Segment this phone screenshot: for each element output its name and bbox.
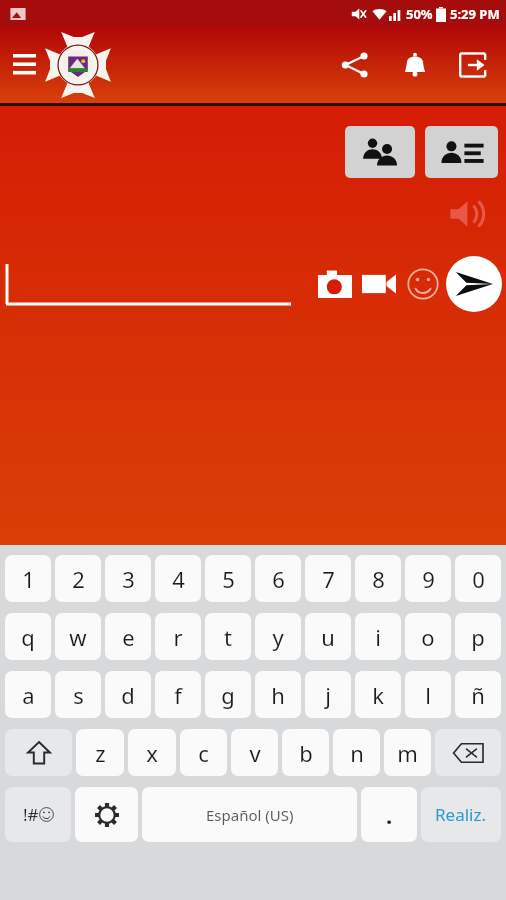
staticText: v <box>249 738 261 768</box>
button[interactable]: i <box>355 613 401 660</box>
staticText: m <box>397 738 418 768</box>
button[interactable]: Sound <box>446 194 486 234</box>
staticText: ñ <box>471 680 485 710</box>
button[interactable]: z <box>76 729 124 776</box>
staticText: 6 <box>272 564 285 594</box>
staticText: p <box>471 622 485 652</box>
button[interactable]: t <box>205 613 251 660</box>
staticText: 0 <box>472 564 485 594</box>
button[interactable]: p <box>455 613 501 660</box>
button[interactable]: Notifications <box>392 42 438 88</box>
staticText: s <box>73 680 84 710</box>
staticText: 5 <box>222 564 235 594</box>
button[interactable]: c <box>180 729 227 776</box>
button[interactable]: 2 <box>55 555 101 602</box>
staticText: b <box>299 738 313 768</box>
button[interactable]: Group chat <box>345 126 415 178</box>
button[interactable]: j <box>305 671 351 718</box>
staticText: !# <box>23 803 39 826</box>
staticText: 4 <box>172 564 185 594</box>
button[interactable]: e <box>105 613 151 660</box>
button[interactable]: ñ <box>455 671 501 718</box>
button[interactable]: Settings <box>75 787 138 842</box>
button[interactable]: r <box>155 613 201 660</box>
button[interactable]: k <box>355 671 401 718</box>
button[interactable]: s <box>55 671 101 718</box>
button[interactable]: g <box>205 671 251 718</box>
staticText: 5:29 PM <box>450 5 500 23</box>
button[interactable]: 4 <box>155 555 201 602</box>
button[interactable]: 3 <box>105 555 151 602</box>
button[interactable]: . <box>361 787 417 842</box>
button[interactable]: 1 <box>5 555 51 602</box>
staticText: t <box>224 622 232 652</box>
staticText: 7 <box>322 564 335 594</box>
button[interactable]: m <box>384 729 431 776</box>
staticText: j <box>325 680 331 710</box>
staticText: Realiz. <box>435 803 487 826</box>
button[interactable]: h <box>255 671 301 718</box>
button[interactable]: w <box>55 613 101 660</box>
button[interactable]: Video <box>358 263 400 305</box>
staticText: w <box>69 622 87 652</box>
staticText: e <box>122 622 135 652</box>
staticText: . <box>386 800 393 830</box>
button[interactable]: Realiz. <box>421 787 501 842</box>
staticText: a <box>22 680 35 710</box>
button[interactable]: Contacts <box>425 126 498 178</box>
staticText: i <box>375 622 381 652</box>
staticText: l <box>425 680 431 710</box>
button[interactable]: l <box>405 671 451 718</box>
button[interactable]: Symbols <box>5 787 71 842</box>
button[interactable]: 9 <box>405 555 451 602</box>
button[interactable]: Emoji <box>402 263 444 305</box>
staticText: o <box>421 622 435 652</box>
staticText: 9 <box>422 564 435 594</box>
button[interactable]: Backspace <box>435 729 501 776</box>
button[interactable]: Logo <box>42 29 114 101</box>
button[interactable]: Shift <box>5 729 72 776</box>
staticText: 3 <box>122 564 135 594</box>
button[interactable]: Log out <box>450 42 496 88</box>
staticText: z <box>95 738 106 768</box>
staticText: k <box>372 680 384 710</box>
button[interactable]: 8 <box>355 555 401 602</box>
button[interactable]: n <box>333 729 380 776</box>
button[interactable]: f <box>155 671 201 718</box>
staticText: f <box>174 680 182 710</box>
button[interactable]: Español (US) <box>142 787 357 842</box>
button[interactable]: Share <box>332 42 378 88</box>
button[interactable]: 7 <box>305 555 351 602</box>
staticText: r <box>173 622 183 652</box>
button[interactable]: u <box>305 613 351 660</box>
button[interactable]: x <box>128 729 176 776</box>
staticText: 50% <box>406 5 433 23</box>
staticText: n <box>350 738 364 768</box>
staticText: d <box>121 680 135 710</box>
button[interactable]: Menu <box>4 45 44 85</box>
button[interactable] <box>6 262 291 306</box>
staticText: y <box>272 622 284 652</box>
button[interactable]: d <box>105 671 151 718</box>
staticText: 1 <box>22 564 35 594</box>
button[interactable]: o <box>405 613 451 660</box>
staticText: x <box>146 738 158 768</box>
button[interactable]: 5 <box>205 555 251 602</box>
button[interactable]: 0 <box>455 555 501 602</box>
button[interactable]: Camera <box>314 263 356 305</box>
staticText: Español (US) <box>206 805 294 825</box>
staticText: 2 <box>72 564 85 594</box>
staticText: g <box>221 680 235 710</box>
button[interactable]: y <box>255 613 301 660</box>
staticText: u <box>321 622 335 652</box>
staticText: h <box>271 680 285 710</box>
button[interactable]: Send <box>446 256 502 312</box>
button[interactable]: 6 <box>255 555 301 602</box>
button[interactable]: a <box>5 671 51 718</box>
button[interactable]: q <box>5 613 51 660</box>
staticText: q <box>21 622 35 652</box>
staticText: c <box>198 738 209 768</box>
staticText: 8 <box>372 564 385 594</box>
button[interactable]: b <box>282 729 329 776</box>
button[interactable]: v <box>231 729 278 776</box>
